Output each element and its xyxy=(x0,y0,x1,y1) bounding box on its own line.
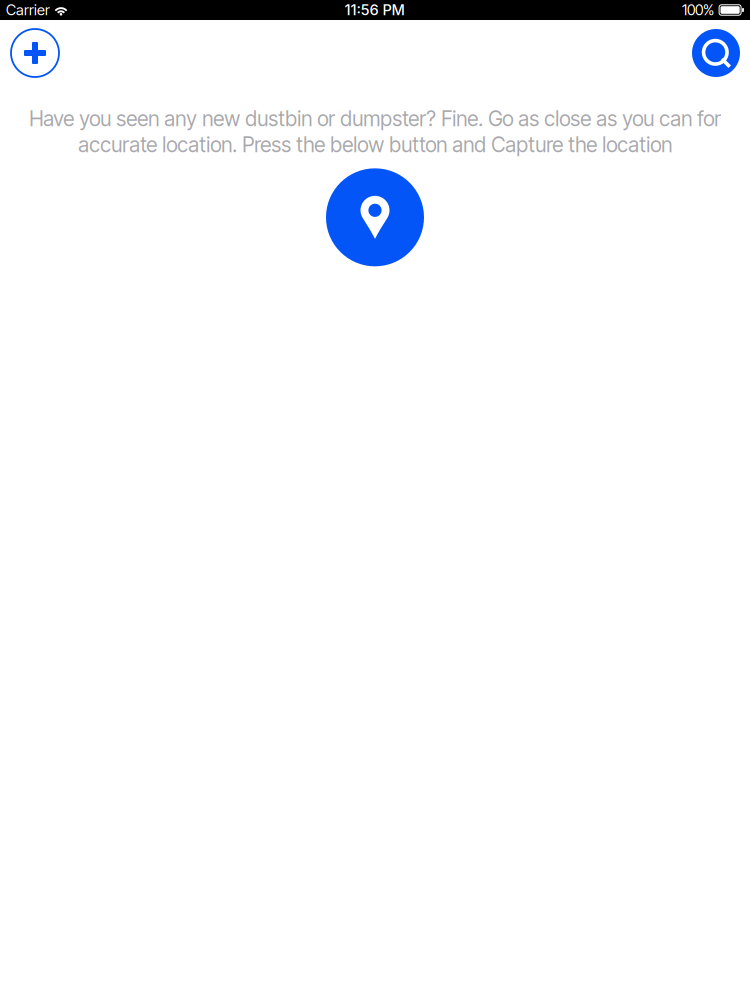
staticText: Carrier xyxy=(6,1,50,19)
staticText: 100% xyxy=(682,1,714,19)
button[interactable]: Add xyxy=(11,29,59,77)
button[interactable]: Search xyxy=(692,29,740,77)
staticText: 11:56 PM xyxy=(344,1,404,19)
staticText: Have you seen any new dustbin or dumpste… xyxy=(29,106,721,157)
button[interactable]: Capture the location xyxy=(326,168,424,266)
